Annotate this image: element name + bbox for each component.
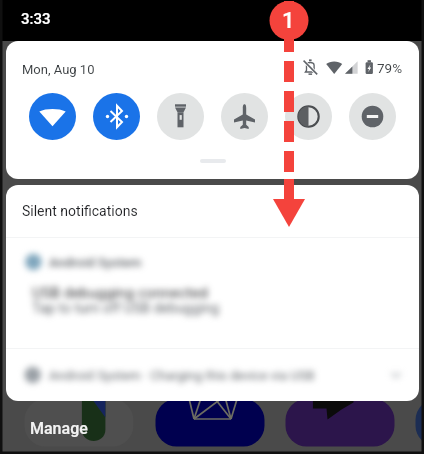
staticText: Android System — [49, 255, 142, 270]
staticText: 79% — [377, 60, 403, 76]
staticText: Tap to turn off USB debugging — [32, 300, 220, 316]
button[interactable]: Bluetooth — [93, 93, 140, 140]
button[interactable]: Do not disturb — [349, 93, 396, 140]
staticText: USB debugging connected — [32, 284, 208, 302]
button[interactable]: Manage — [24, 414, 94, 443]
staticText: 3:33 — [21, 10, 51, 28]
staticText: Mon, Aug 10 — [22, 62, 95, 77]
staticText: Android System · Charging this device vi… — [49, 368, 315, 383]
button[interactable]: Wi-Fi — [29, 93, 76, 140]
staticText: Manage — [30, 419, 88, 438]
staticText: Silent notifications — [22, 203, 138, 219]
button[interactable]: Android System · Charging this device vi… — [6, 349, 419, 393]
staticText: 1 — [282, 8, 295, 34]
button[interactable]: Dark theme — [285, 93, 332, 140]
button[interactable]: Airplane mode — [221, 93, 268, 140]
button[interactable]: Flashlight — [157, 93, 204, 140]
button[interactable]: Android System — [6, 238, 419, 348]
